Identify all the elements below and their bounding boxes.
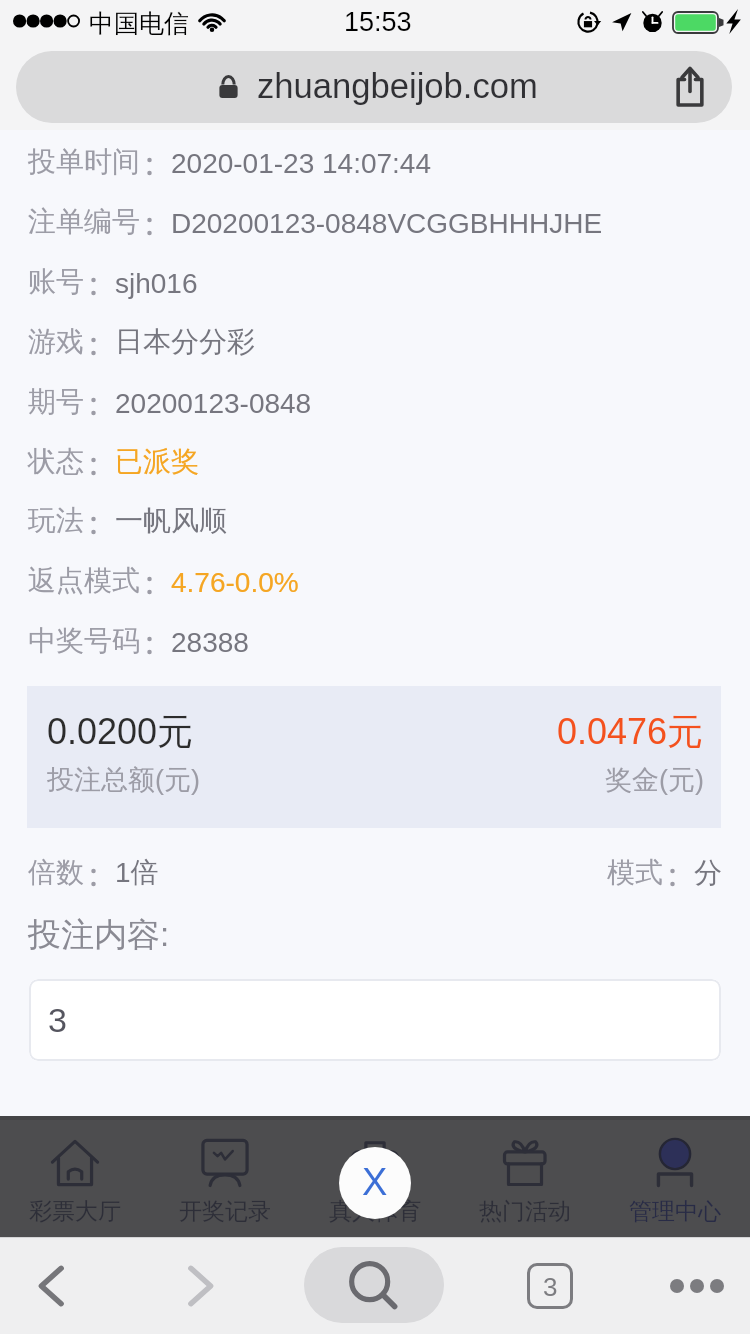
staticText: 3: [543, 1272, 558, 1301]
staticText: 15:53: [344, 7, 412, 37]
staticText: X: [362, 1161, 388, 1203]
staticText: 热门活动: [479, 1197, 571, 1226]
staticText: 奖金(元): [605, 763, 704, 797]
staticText: 4.76-0.0%: [171, 567, 299, 598]
staticText: 2020-01-23 14:07:44: [171, 148, 431, 179]
button[interactable]: Back: [0, 1237, 104, 1334]
staticText: 开奖记录: [179, 1197, 271, 1226]
staticText: 倍数: [28, 855, 84, 890]
staticText: 管理中心: [629, 1197, 721, 1226]
button[interactable]: Close: [339, 1147, 411, 1219]
staticText: 一帆风顺: [115, 503, 227, 538]
button[interactable]: zhuangbeijob.com: [16, 51, 732, 123]
button[interactable]: 热门活动: [450, 1116, 600, 1237]
staticText: 中国电信: [89, 8, 189, 39]
button[interactable]: Tabs: [495, 1237, 605, 1334]
staticText: 期号: [28, 384, 84, 419]
staticText: 已派奖: [115, 444, 199, 479]
staticText: 投单时间: [28, 144, 140, 179]
staticText: 中奖号码: [28, 623, 140, 658]
staticText: 注单编号: [28, 204, 140, 239]
button[interactable]: 彩票大厅: [0, 1116, 150, 1237]
button[interactable]: 开奖记录: [150, 1116, 300, 1237]
staticText: 状态: [28, 444, 84, 479]
staticText: 20200123-0848: [115, 388, 312, 419]
button[interactable]: 真人体育: [300, 1116, 450, 1237]
staticText: 真人体育: [329, 1197, 421, 1226]
staticText: sjh016: [115, 268, 198, 299]
staticText: 模式: [607, 855, 663, 890]
button[interactable]: 管理中心: [600, 1116, 750, 1237]
staticText: 3: [48, 1001, 67, 1039]
button[interactable]: More: [642, 1237, 750, 1334]
staticText: 彩票大厅: [29, 1197, 121, 1226]
staticText: 0.0200元: [47, 709, 194, 754]
staticText: zhuangbeijob.com: [257, 67, 538, 106]
button[interactable]: Share: [659, 55, 721, 117]
staticText: 投注内容:: [28, 914, 170, 956]
staticText: 投注总额(元): [47, 763, 200, 797]
staticText: 返点模式: [28, 563, 140, 598]
staticText: 0.0476元: [557, 709, 704, 754]
staticText: 游戏: [28, 324, 84, 359]
staticText: 账号: [28, 264, 84, 299]
staticText: 玩法: [28, 503, 84, 538]
staticText: 1倍: [115, 855, 159, 890]
button[interactable]: Search: [304, 1247, 444, 1323]
staticText: D20200123-0848VCGGBHHHJHE: [171, 208, 603, 239]
staticText: 日本分分彩: [115, 324, 255, 359]
button[interactable]: Forward: [148, 1237, 252, 1334]
staticText: 28388: [171, 627, 249, 658]
staticText: 分: [694, 855, 722, 890]
